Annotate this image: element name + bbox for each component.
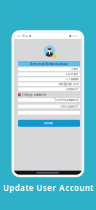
staticText: new password xyxy=(60,105,78,108)
staticText: name xyxy=(71,67,78,71)
staticText: 9:41 xyxy=(72,34,79,37)
staticText: Change password xyxy=(22,93,46,96)
staticText: ▲ xyxy=(26,34,28,37)
staticText: Update User Account xyxy=(3,183,93,193)
staticText: ✉ xyxy=(22,33,25,38)
staticText: 07xxxxxxxx xyxy=(66,77,78,81)
staticText: ● xyxy=(29,34,31,37)
staticText: mail@gmail.com xyxy=(58,82,78,86)
staticText: ▭ xyxy=(17,33,21,38)
staticText: General Information xyxy=(29,61,68,66)
staticText: username xyxy=(65,72,78,76)
staticText: password xyxy=(66,87,78,91)
staticText: Confirm password xyxy=(54,98,78,102)
staticText: ▮▮ xyxy=(69,34,71,37)
staticText: SUBMIT xyxy=(44,121,54,125)
